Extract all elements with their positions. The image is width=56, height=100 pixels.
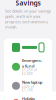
staticText: £420 of £1,100 [22,85,34,92]
button[interactable]: New laptop [4,78,52,94]
button[interactable] [12,43,44,52]
button[interactable]: Holiday 2025 [4,94,52,100]
staticText: New laptop [22,80,42,85]
staticText: Emergency fund [22,58,42,68]
staticText: £1,250 of £2,000 [22,68,37,76]
staticText: Savings [15,0,40,7]
button[interactable]: Emergency fund [4,56,52,78]
staticText: See details on your savings goals, and t… [5,8,51,29]
staticText: Holiday 2025 [22,96,35,100]
